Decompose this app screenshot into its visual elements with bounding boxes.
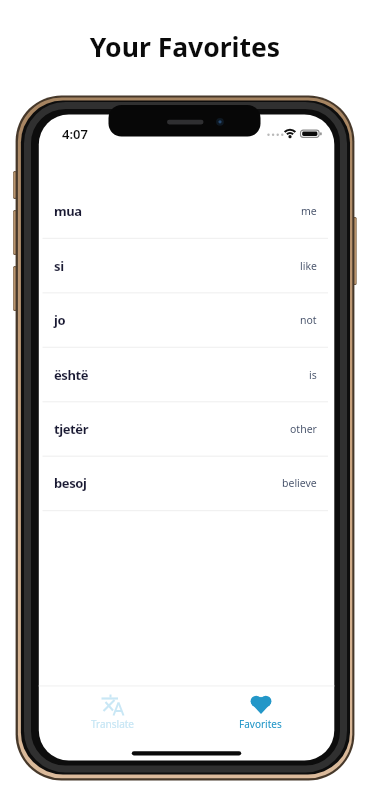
button[interactable]: është	[39, 348, 335, 402]
staticText: jo	[54, 311, 66, 329]
staticText: is	[309, 368, 317, 382]
staticText: other	[290, 422, 317, 436]
staticText: tjetër	[54, 420, 89, 438]
staticText: Favorites	[239, 717, 282, 731]
staticText: si	[54, 257, 64, 275]
button[interactable]: Translate	[68, 686, 158, 734]
staticText: me	[301, 204, 317, 218]
button[interactable]: jo	[39, 293, 335, 347]
staticText: like	[300, 259, 317, 273]
staticText: not	[300, 313, 317, 327]
button[interactable]: si	[39, 239, 335, 293]
staticText: 4:07	[62, 125, 88, 143]
button[interactable]: Favorites	[215, 686, 305, 734]
staticText: është	[54, 366, 89, 384]
button[interactable]: besoj	[39, 456, 335, 510]
staticText: mua	[54, 202, 82, 220]
staticText: Translate	[91, 717, 135, 731]
staticText: believe	[282, 476, 317, 490]
button[interactable]: mua	[39, 184, 335, 238]
staticText: Your Favorites	[0, 29, 370, 65]
staticText: besoj	[54, 474, 87, 492]
button[interactable]: tjetër	[39, 402, 335, 456]
